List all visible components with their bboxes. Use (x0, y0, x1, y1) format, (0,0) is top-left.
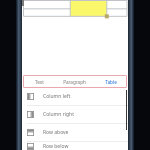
button[interactable]: Paragraph (55, 75, 94, 88)
button[interactable]: Text (23, 75, 55, 88)
staticText: Column right (43, 111, 74, 118)
staticText: Row below (43, 143, 69, 150)
other: Column left (27, 93, 34, 100)
other: Row above (27, 129, 34, 136)
button[interactable]: Row above (22, 124, 128, 141)
button[interactable]: Row below (22, 142, 128, 150)
other: Row below (27, 143, 34, 150)
other: Column right (27, 111, 34, 118)
button[interactable]: Column right (22, 106, 128, 123)
staticText: Row above (43, 129, 69, 136)
staticText: Text (35, 79, 44, 85)
button[interactable]: Column left (22, 88, 128, 105)
staticText: Paragraph (63, 79, 86, 85)
staticText: Table (105, 79, 117, 85)
button[interactable]: Table (94, 75, 127, 88)
staticText: Column left (43, 93, 71, 100)
